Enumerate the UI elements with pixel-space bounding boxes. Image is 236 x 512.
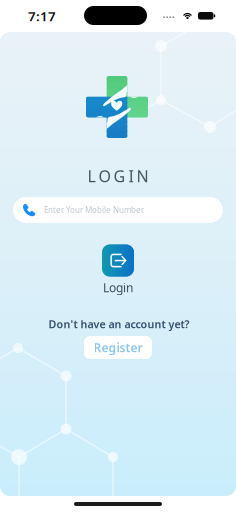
staticText: Enter Your Mobile Number — [44, 205, 144, 215]
button[interactable]: Register — [84, 336, 152, 359]
staticText: LOGIN — [87, 165, 148, 187]
staticText: Login — [103, 279, 133, 295]
button[interactable]: Enter Your Mobile Number — [13, 197, 223, 223]
button[interactable]: Login — [87, 246, 149, 294]
staticText: 7:17 — [28, 7, 56, 25]
staticText: Don't have an account yet? — [48, 317, 189, 331]
staticText: Register — [93, 339, 142, 355]
